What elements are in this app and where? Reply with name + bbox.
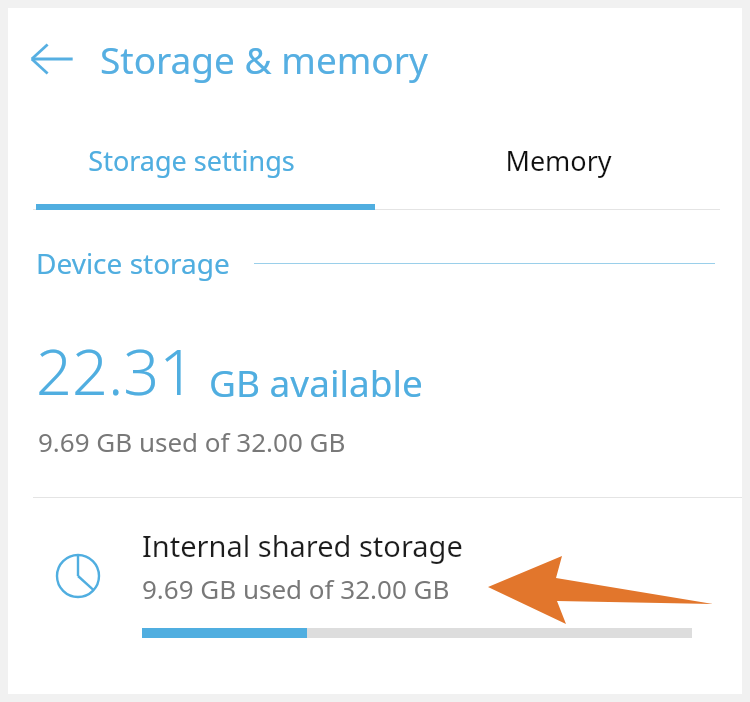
button[interactable]: Internal shared storage	[8, 498, 742, 638]
staticText: Internal shared storage	[142, 526, 463, 565]
staticText: GB available	[209, 357, 423, 407]
button[interactable]: Back	[22, 29, 82, 89]
staticText: Storage settings	[88, 142, 295, 179]
staticText: 9.69 GB used of 32.00 GB	[142, 571, 450, 606]
staticText: 22.31	[36, 328, 196, 414]
staticText: Memory	[505, 142, 612, 179]
button[interactable]: Storage settings	[8, 110, 375, 210]
staticText: 9.69 GB used of 32.00 GB	[38, 424, 346, 459]
button[interactable]: Memory	[375, 110, 742, 210]
staticText: Storage & memory	[100, 34, 428, 84]
staticText: Device storage	[36, 244, 230, 282]
